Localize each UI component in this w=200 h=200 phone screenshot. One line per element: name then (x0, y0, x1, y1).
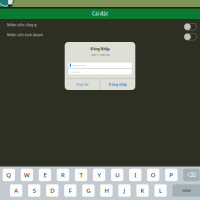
staticText: J (123, 186, 125, 195)
staticText: Cài đặt (92, 11, 108, 17)
staticText: D (50, 186, 54, 195)
button[interactable]: A (10, 184, 22, 197)
button[interactable]: P (165, 169, 177, 181)
button[interactable]: Đăng nhập (100, 79, 135, 90)
staticText: Y (98, 171, 101, 179)
staticText: Mật khẩu (70, 70, 79, 73)
staticText: O (151, 171, 156, 179)
staticText: S (33, 186, 36, 195)
button[interactable]: H (100, 184, 112, 197)
button[interactable]: F (64, 184, 76, 197)
staticText: K (140, 186, 144, 195)
staticText: L (159, 186, 162, 195)
button[interactable]: O (147, 169, 159, 181)
staticText: Thông tin đăng nhập (90, 53, 109, 56)
staticText: H (104, 186, 108, 195)
staticText: Đăng Nhập (90, 47, 109, 51)
staticText: A (14, 186, 18, 195)
staticText: F (69, 186, 72, 195)
staticText: R (61, 171, 65, 179)
button[interactable]: return (172, 184, 200, 197)
button[interactable]: Q (3, 169, 15, 181)
staticText: W (24, 171, 30, 179)
staticText: P (169, 171, 173, 179)
staticText: Nhân viên kinh doanh (7, 33, 43, 37)
button[interactable]: L (154, 184, 167, 197)
staticText: ⌫ (187, 171, 195, 178)
staticText: Huỷ bỏ (76, 82, 88, 87)
button[interactable]: Y (93, 169, 105, 181)
staticText: return (182, 188, 191, 193)
staticText: Đăng nhập (109, 82, 127, 87)
button[interactable]: G (82, 184, 94, 197)
staticText: Tên đăng nhập (72, 64, 85, 67)
staticText: G (86, 186, 90, 195)
staticText: E (43, 171, 46, 179)
button[interactable]: S (28, 184, 40, 197)
staticText: Q (6, 171, 11, 179)
button[interactable]: W (21, 169, 33, 181)
button[interactable]: J (118, 184, 131, 197)
button[interactable]: Nhân viên kinh doanh toggle (184, 33, 197, 40)
button[interactable]: Nhân viên công ty toggle (184, 23, 197, 30)
button[interactable]: I (129, 169, 141, 181)
staticText: U (115, 171, 119, 179)
button[interactable]: Huỷ bỏ (65, 79, 100, 90)
button[interactable]: K (136, 184, 149, 197)
staticText: Nhân viên công ty (7, 23, 37, 27)
staticText: T (80, 171, 83, 179)
button[interactable]: U (111, 169, 123, 181)
staticText: I (134, 171, 136, 179)
button[interactable]: Delete (183, 169, 200, 181)
button[interactable]: R (57, 169, 69, 181)
button[interactable]: E (39, 169, 51, 181)
button[interactable]: D (46, 184, 58, 197)
button[interactable]: T (75, 169, 87, 181)
